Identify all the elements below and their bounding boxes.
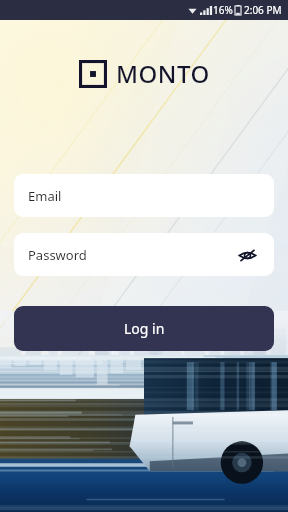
staticText: MONTO [116, 57, 210, 90]
button[interactable]: Log in [14, 306, 274, 351]
staticText: Log in [124, 319, 165, 338]
button[interactable]: Password [14, 233, 274, 276]
button[interactable]: Show password [234, 242, 260, 268]
staticText: Email [28, 187, 62, 205]
staticText: 16% [213, 3, 233, 17]
staticText: Password [28, 246, 87, 264]
button[interactable]: Email [14, 174, 274, 217]
staticText: 2:06 PM [244, 3, 282, 17]
